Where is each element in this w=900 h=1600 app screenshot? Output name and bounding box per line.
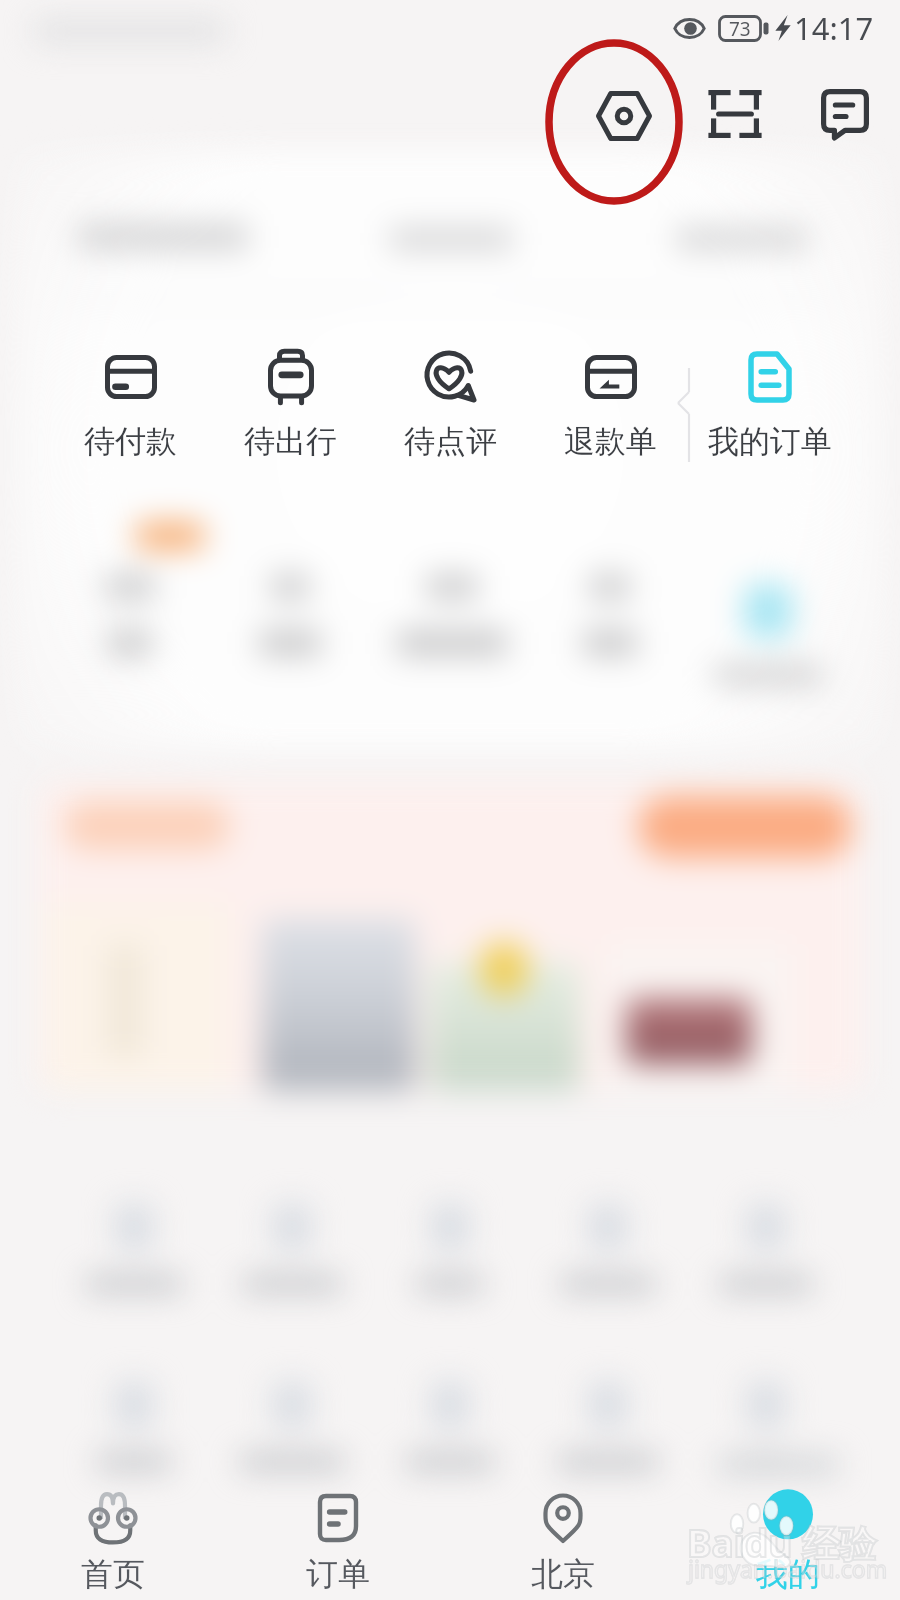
- staticText: jingyan.baidu.com: [688, 1553, 888, 1584]
- staticText: 待点评: [404, 422, 497, 461]
- staticText: 我的: [756, 1554, 820, 1594]
- staticText: Baidu 经验: [687, 1517, 876, 1568]
- staticText: 我的订单: [708, 422, 832, 461]
- button[interactable]: 退款单: [538, 330, 682, 478]
- staticText: 首页: [81, 1554, 145, 1594]
- staticText: 73: [729, 16, 751, 42]
- staticText: jingyan.baidu.com: [688, 1553, 888, 1584]
- staticText: 订单: [306, 1554, 370, 1594]
- button[interactable]: 待付款: [58, 330, 202, 478]
- button[interactable]: 首页: [1, 1484, 225, 1600]
- button[interactable]: Scan: [701, 80, 769, 148]
- button[interactable]: 北京: [451, 1484, 675, 1600]
- button[interactable]: 订单: [226, 1484, 450, 1600]
- button[interactable]: 我的订单: [698, 330, 842, 478]
- button[interactable]: 待点评: [378, 330, 522, 478]
- staticText: Baidu 经验: [687, 1517, 876, 1568]
- button[interactable]: 我的: [676, 1484, 900, 1600]
- button[interactable]: Messages: [811, 80, 879, 148]
- staticText: 北京: [531, 1554, 595, 1594]
- staticText: 14:17: [794, 7, 874, 49]
- staticText: 待出行: [244, 422, 337, 461]
- staticText: 待付款: [84, 422, 177, 461]
- staticText: 退款单: [564, 422, 657, 461]
- button[interactable]: Settings: [590, 82, 658, 150]
- button[interactable]: 待出行: [218, 330, 362, 478]
